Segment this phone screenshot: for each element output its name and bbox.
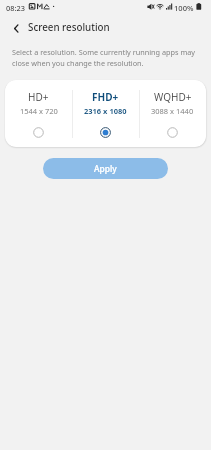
staticText: 2316 x 1080: [84, 106, 127, 116]
button[interactable]: Back: [4, 16, 28, 40]
staticText: 3088 x 1440: [151, 106, 194, 116]
staticText: Apply: [94, 163, 117, 174]
staticText: 100%: [174, 3, 194, 13]
button[interactable]: WQHD+: [139, 80, 206, 147]
staticText: 08:23: [6, 3, 25, 13]
button[interactable]: Apply: [43, 158, 168, 179]
staticText: Select a resolution. Some currently runn…: [12, 47, 196, 68]
staticText: 1544 x 720: [20, 106, 58, 116]
staticText: WQHD+: [154, 90, 192, 104]
staticText: Screen resolution: [28, 21, 110, 34]
staticText: HD+: [28, 90, 49, 104]
button[interactable]: FHD+: [72, 80, 139, 147]
button[interactable]: HD+: [5, 80, 72, 147]
staticText: FHD+: [92, 90, 119, 104]
